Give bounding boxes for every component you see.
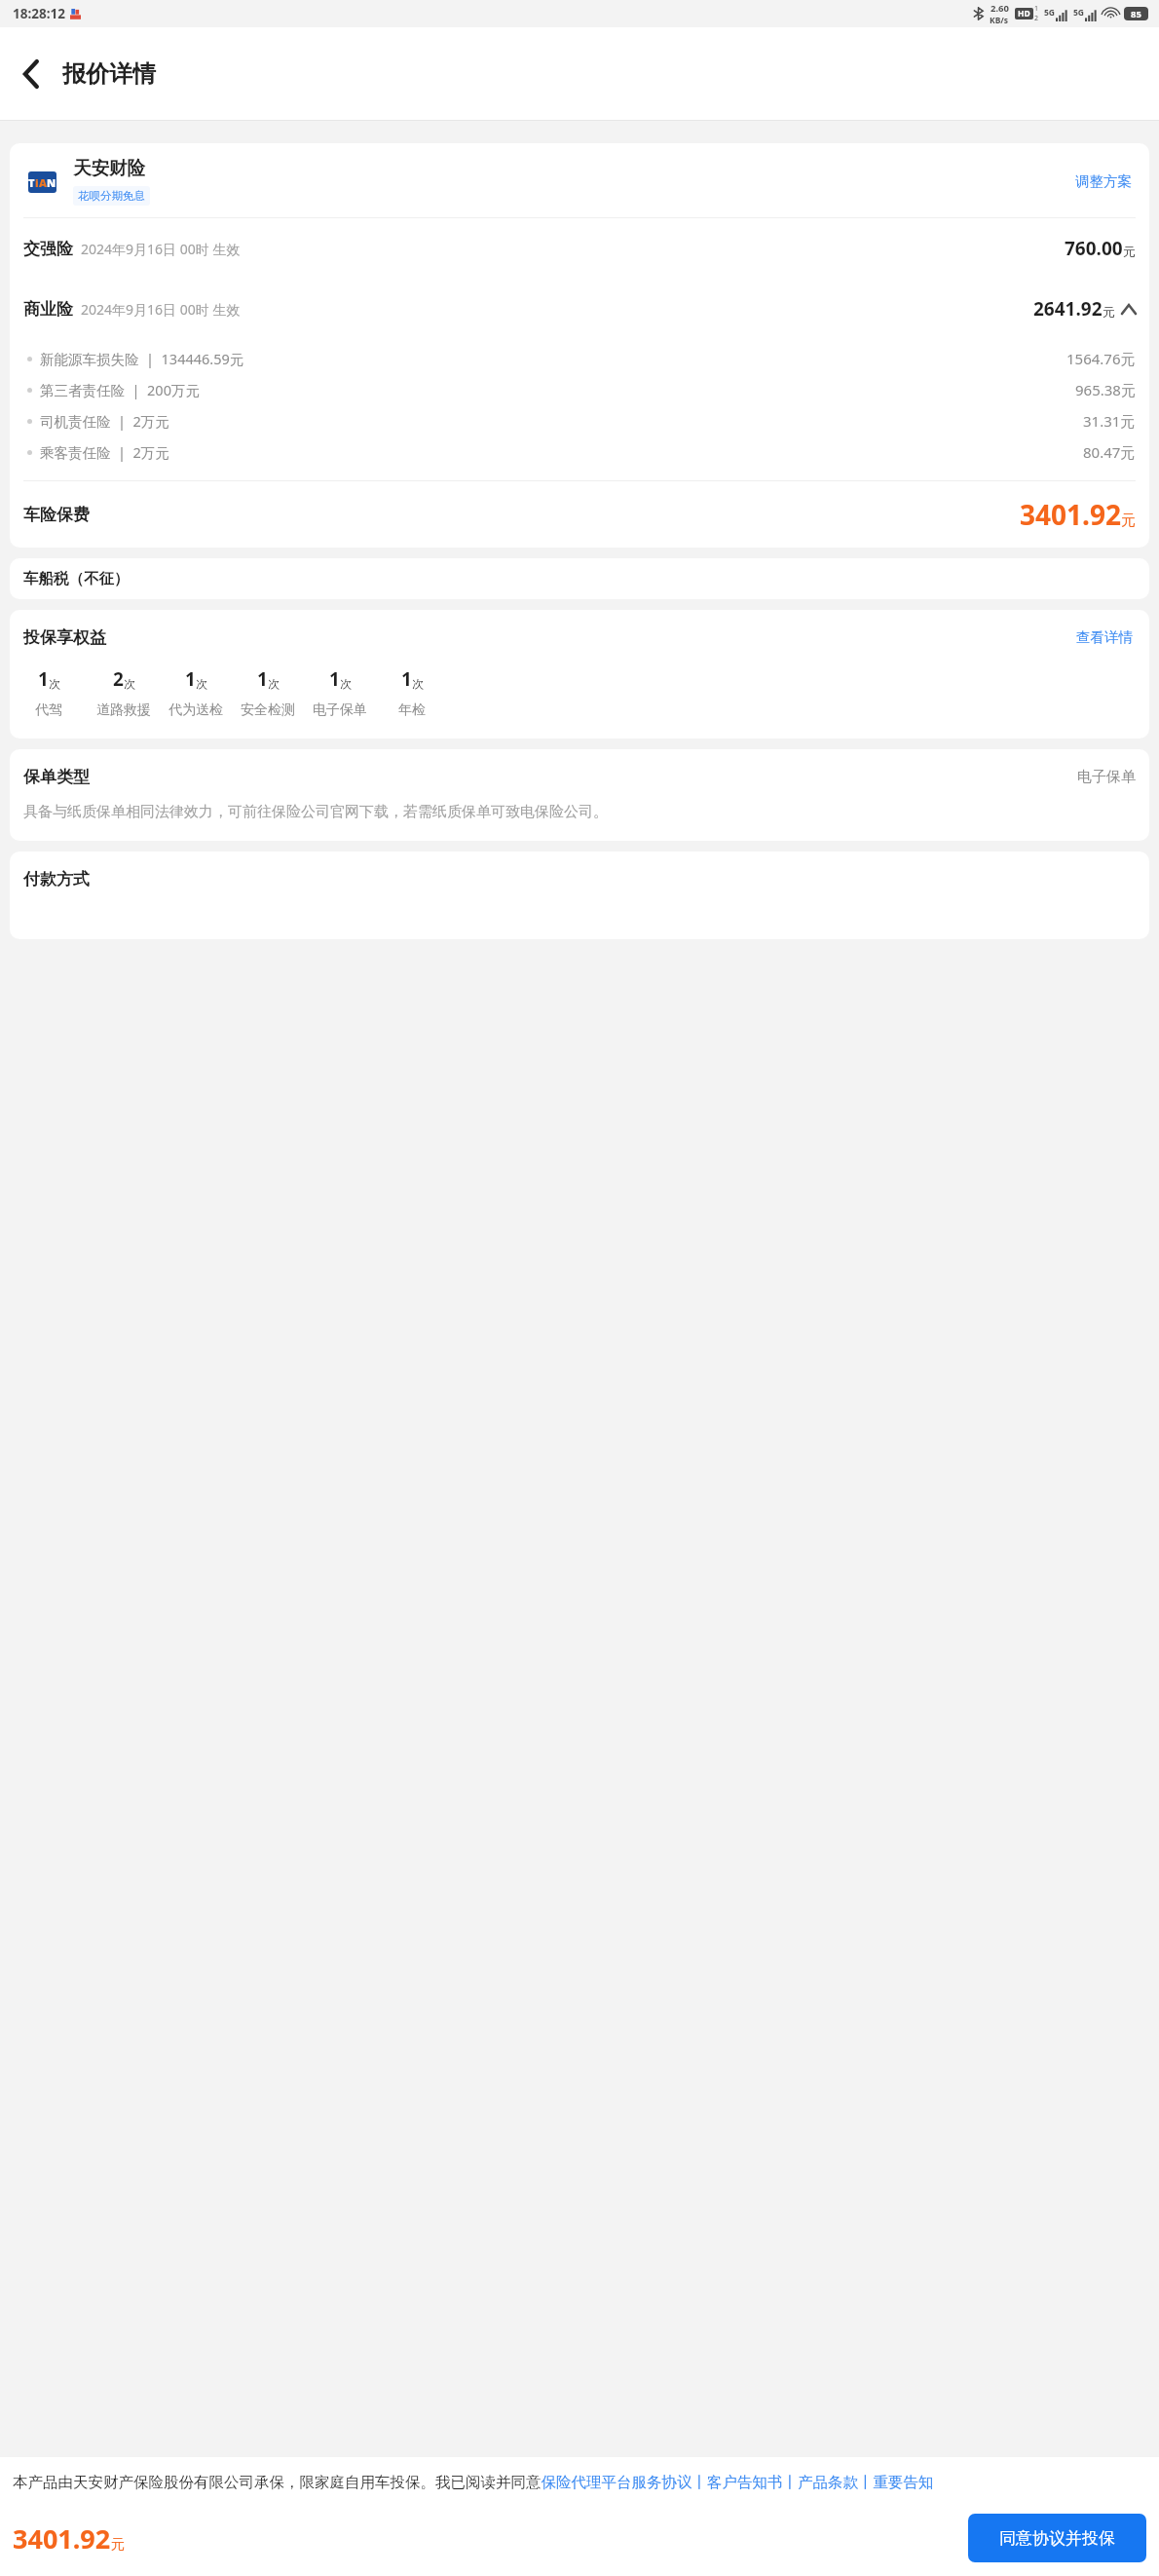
staticText: 965.38元 <box>1075 380 1136 399</box>
button[interactable]: 1 <box>160 666 232 719</box>
staticText: 2024年9月16日 00时 生效 <box>81 300 241 319</box>
staticText: 3401.92 <box>1020 496 1121 533</box>
button[interactable]: 1 <box>304 666 376 719</box>
staticText: 代驾 <box>35 701 62 719</box>
staticText: 2024年9月16日 00时 生效 <box>81 240 241 258</box>
staticText: 安全检测 <box>241 701 295 719</box>
staticText: i <box>35 175 39 190</box>
button[interactable]: 1 <box>376 666 448 719</box>
staticText: KB/s <box>990 15 1009 26</box>
staticText: T <box>28 175 35 190</box>
staticText: 具备与纸质保单相同法律效力，可前往保险公司官网下载，若需纸质保单可致电保险公司。 <box>23 803 608 821</box>
staticText: 商业险 <box>23 299 73 320</box>
staticText: 元 <box>111 2536 125 2554</box>
staticText: 同意协议并投保 <box>999 2528 1115 2549</box>
staticText: 天安财险 <box>73 157 145 179</box>
staticText: 道路救援 <box>96 701 151 719</box>
staticText: 年检 <box>398 701 426 719</box>
button[interactable]: 2 <box>88 666 160 719</box>
staticText: 电子保单 <box>1077 768 1136 786</box>
staticText: 760.00 <box>1065 236 1123 261</box>
staticText: 次 <box>412 676 424 691</box>
staticText: 花呗分期免息 <box>78 189 145 203</box>
staticText: 次 <box>196 676 207 691</box>
staticText: 交强险 <box>23 239 73 259</box>
staticText: N <box>47 175 56 190</box>
staticText: 80.47元 <box>1083 442 1136 462</box>
staticText: 2 <box>113 666 124 692</box>
staticText: 2 <box>1034 14 1039 23</box>
staticText: 电子保单 <box>313 701 367 719</box>
staticText: 31.31元 <box>1083 411 1136 431</box>
staticText: 投保享权益 <box>23 627 106 648</box>
staticText: 次 <box>49 676 60 691</box>
button[interactable]: 1 <box>10 666 88 719</box>
staticText: 1 <box>185 666 196 692</box>
staticText: 次 <box>340 676 352 691</box>
staticText: 2.60 <box>991 2 1009 15</box>
staticText: 报价详情 <box>62 59 156 89</box>
staticText: 代为送检 <box>168 701 223 719</box>
staticText: 付款方式 <box>23 869 90 890</box>
button[interactable]: 同意协议并投保 <box>968 2514 1146 2562</box>
button[interactable]: 商业险 <box>10 279 1149 339</box>
staticText: A <box>39 175 47 190</box>
staticText: 乘客责任险 | 2万元 <box>40 442 169 462</box>
staticText: 司机责任险 | 2万元 <box>40 411 169 431</box>
staticText: 调整方案 <box>1075 172 1132 190</box>
staticText: 5G <box>1044 7 1056 19</box>
staticText: 新能源车损失险 | 134446.59元 <box>40 349 244 368</box>
button[interactable]: 调整方案 <box>1071 169 1136 194</box>
staticText: 车险保费 <box>23 505 90 525</box>
staticText: 元 <box>1121 511 1136 530</box>
staticText: 1564.76元 <box>1066 349 1136 368</box>
staticText: 1 <box>401 666 412 692</box>
staticText: 次 <box>124 676 135 691</box>
staticText: 元 <box>1103 304 1115 320</box>
staticText: 1 <box>38 666 49 692</box>
staticText: 3401.92 <box>13 2520 111 2557</box>
staticText: 2641.92 <box>1033 296 1103 322</box>
staticText: 85 <box>1131 8 1141 20</box>
staticText: 5G <box>1073 7 1085 19</box>
staticText: 车船税（不征） <box>23 569 130 588</box>
staticText: 次 <box>268 676 280 691</box>
staticText: 1 <box>329 666 340 692</box>
staticText: 保单类型 <box>23 767 90 787</box>
staticText: 1 <box>1034 4 1039 14</box>
button[interactable]: 1 <box>232 666 304 719</box>
button[interactable]: 本产品由天安财产保险股份有限公司承保，限家庭自用车投保。我已阅读并同意保险代理平… <box>13 2473 934 2492</box>
staticText: HD <box>1018 8 1030 19</box>
staticText: 查看详情 <box>1076 628 1133 646</box>
button[interactable]: Back <box>0 43 62 105</box>
staticText: 1 <box>257 666 268 692</box>
staticText: 第三者责任险 | 200万元 <box>40 380 200 399</box>
staticText: 元 <box>1123 244 1136 259</box>
staticText: 18:28:12 <box>13 5 65 22</box>
button[interactable]: 查看详情 <box>1073 625 1136 649</box>
